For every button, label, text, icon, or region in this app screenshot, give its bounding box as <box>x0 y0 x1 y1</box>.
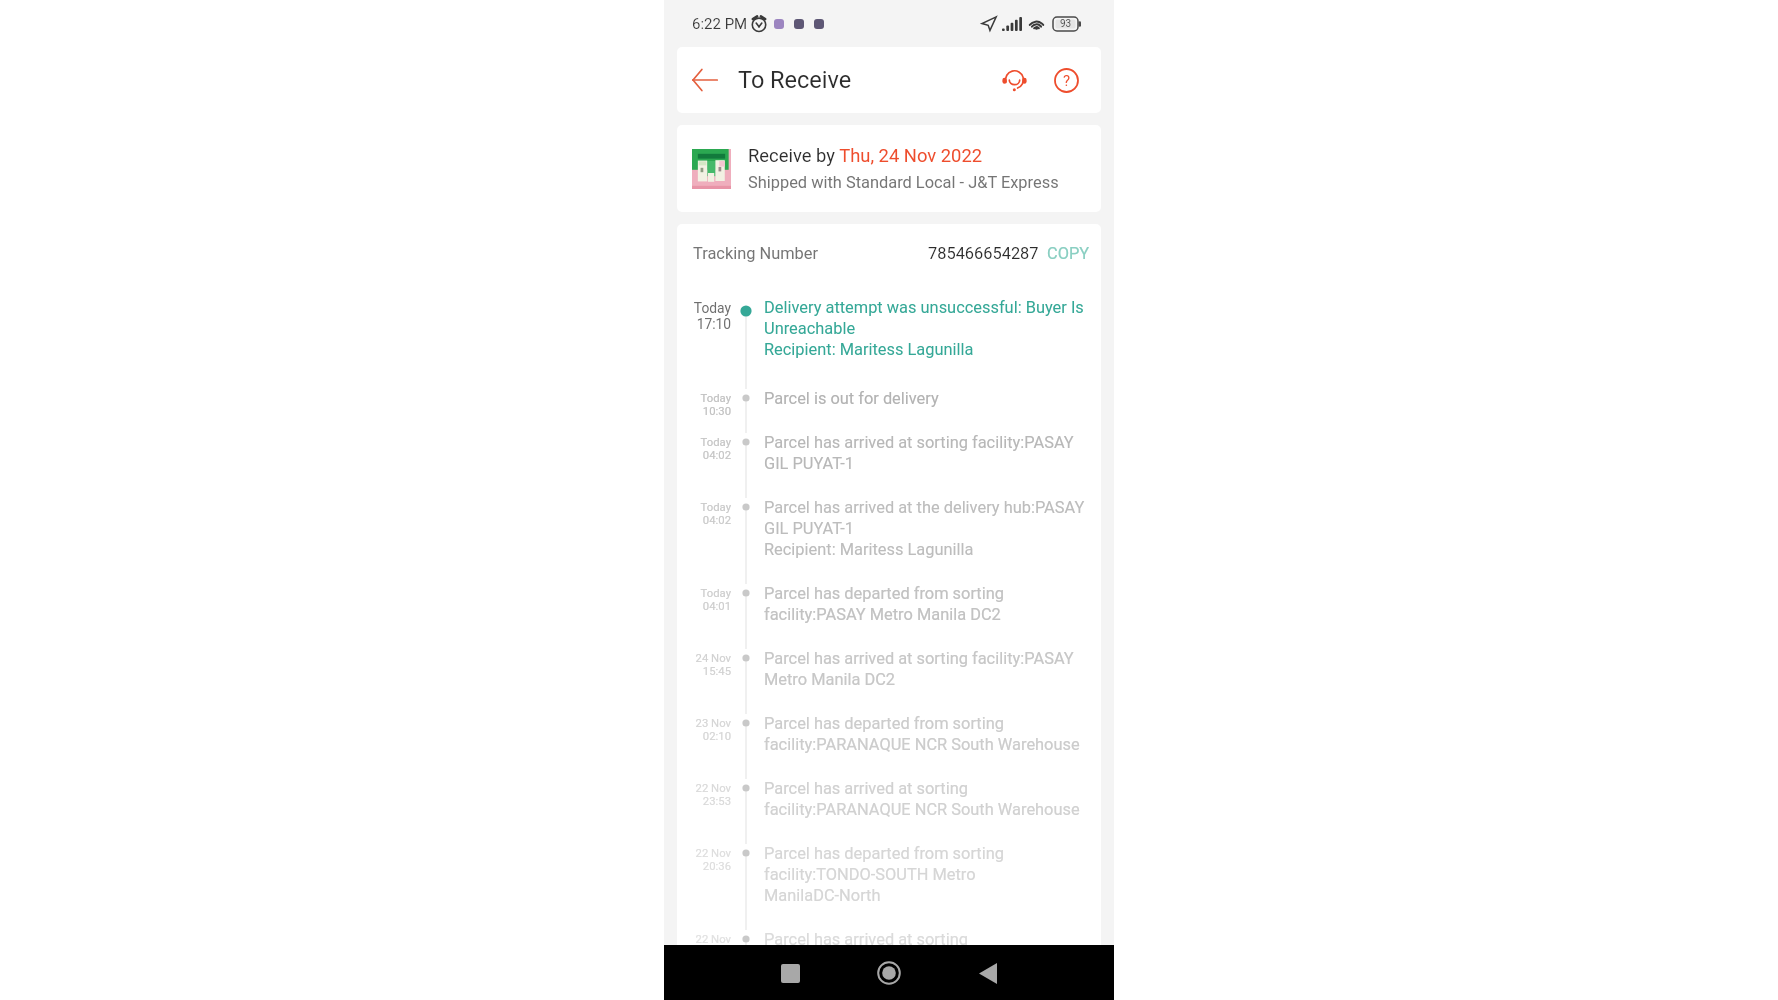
staticText: ? <box>1063 72 1071 90</box>
staticText: Parcel has departed from sorting facilit… <box>764 844 1004 905</box>
staticText: 785466654287 <box>928 244 1039 263</box>
button[interactable]: Back <box>684 59 726 101</box>
button[interactable]: Back <box>965 950 1011 996</box>
button[interactable]: Home <box>866 950 912 996</box>
staticText: Parcel has departed from sorting facilit… <box>764 714 1080 754</box>
staticText: COPY <box>1047 244 1090 263</box>
staticText: Delivery attempt was unsuccessful: Buyer… <box>764 298 1084 359</box>
staticText: Parcel has arrived at sorting facility:T… <box>764 930 976 970</box>
staticText: 22 Nov <box>695 933 731 946</box>
staticText: 15:45 <box>702 665 731 678</box>
staticText: 02:10 <box>702 730 731 743</box>
staticText: Parcel has arrived at sorting facility:P… <box>764 779 1080 819</box>
staticText: Today <box>700 501 731 514</box>
staticText: Parcel is out for delivery <box>764 389 939 408</box>
staticText: 20:36 <box>702 860 731 873</box>
staticText: Parcel has arrived at sorting facility:P… <box>764 649 1074 689</box>
staticText: 24 Nov <box>695 652 731 665</box>
staticText: Shipped with Standard Local - J&T Expres… <box>748 173 1059 192</box>
staticText: Parcel has arrived at sorting facility:P… <box>764 433 1074 473</box>
staticText: Today <box>700 587 731 600</box>
button[interactable]: Help <box>1045 59 1087 101</box>
button[interactable]: Receive by Thu, 24 Nov 2022 <box>677 125 1101 212</box>
staticText: Parcel has departed from sorting facilit… <box>764 584 1004 624</box>
button[interactable]: Customer support <box>993 59 1035 101</box>
staticText: Parcel has arrived at the delivery hub:P… <box>764 498 1085 559</box>
staticText: 04:02 <box>702 514 731 527</box>
staticText: Tracking Number <box>693 244 819 263</box>
button[interactable]: Recents <box>767 950 813 996</box>
staticText: To Receive <box>738 66 852 94</box>
staticText: 04:02 <box>702 449 731 462</box>
staticText: 17:10 <box>696 316 731 332</box>
staticText: 04:01 <box>702 600 731 613</box>
button[interactable]: COPY <box>1047 244 1090 263</box>
staticText: 23:53 <box>702 795 731 808</box>
staticText: 22 Nov <box>695 847 731 860</box>
staticText: Today <box>693 300 731 316</box>
staticText: Today <box>700 392 731 405</box>
staticText: 23 Nov <box>695 717 731 730</box>
staticText: 93 <box>1060 18 1072 30</box>
staticText: 22 Nov <box>695 782 731 795</box>
staticText: 6:22 PM <box>692 15 748 33</box>
staticText: Today <box>700 436 731 449</box>
staticText: 10:30 <box>702 405 731 418</box>
staticText: Receive by Thu, 24 Nov 2022 <box>748 145 983 167</box>
